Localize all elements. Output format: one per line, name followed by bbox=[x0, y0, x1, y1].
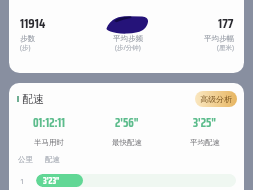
staticText: 11914 bbox=[20, 13, 46, 34]
staticText: 平均配速 bbox=[190, 138, 220, 147]
staticText: 半马用时 bbox=[34, 138, 64, 147]
staticText: (步/分钟) bbox=[115, 43, 141, 52]
staticText: 最快配速 bbox=[112, 138, 142, 147]
staticText: 步数 bbox=[20, 34, 35, 43]
staticText: (厘米) bbox=[217, 43, 234, 52]
staticText: 3'23" bbox=[43, 174, 60, 187]
staticText: 配速 bbox=[45, 155, 60, 164]
staticText: 公里 bbox=[18, 155, 33, 164]
staticText: (步) bbox=[20, 43, 31, 52]
staticText: 01:12:11 bbox=[33, 111, 65, 133]
staticText: 高级分析 bbox=[200, 94, 232, 104]
staticText bbox=[126, 13, 129, 34]
staticText: 2'56" bbox=[115, 111, 139, 133]
staticText: 平均步频 bbox=[113, 34, 143, 43]
staticText: 177 bbox=[218, 13, 234, 34]
button[interactable]: 高级分析 bbox=[195, 91, 237, 107]
staticText: 平均步幅 bbox=[204, 34, 234, 43]
staticText: 配速 bbox=[22, 92, 44, 106]
button[interactable]: 配速 bbox=[17, 92, 44, 106]
staticText: 1 bbox=[20, 176, 25, 186]
staticText: 3'25" bbox=[193, 111, 217, 133]
button[interactable]: 1 bbox=[9, 174, 244, 187]
